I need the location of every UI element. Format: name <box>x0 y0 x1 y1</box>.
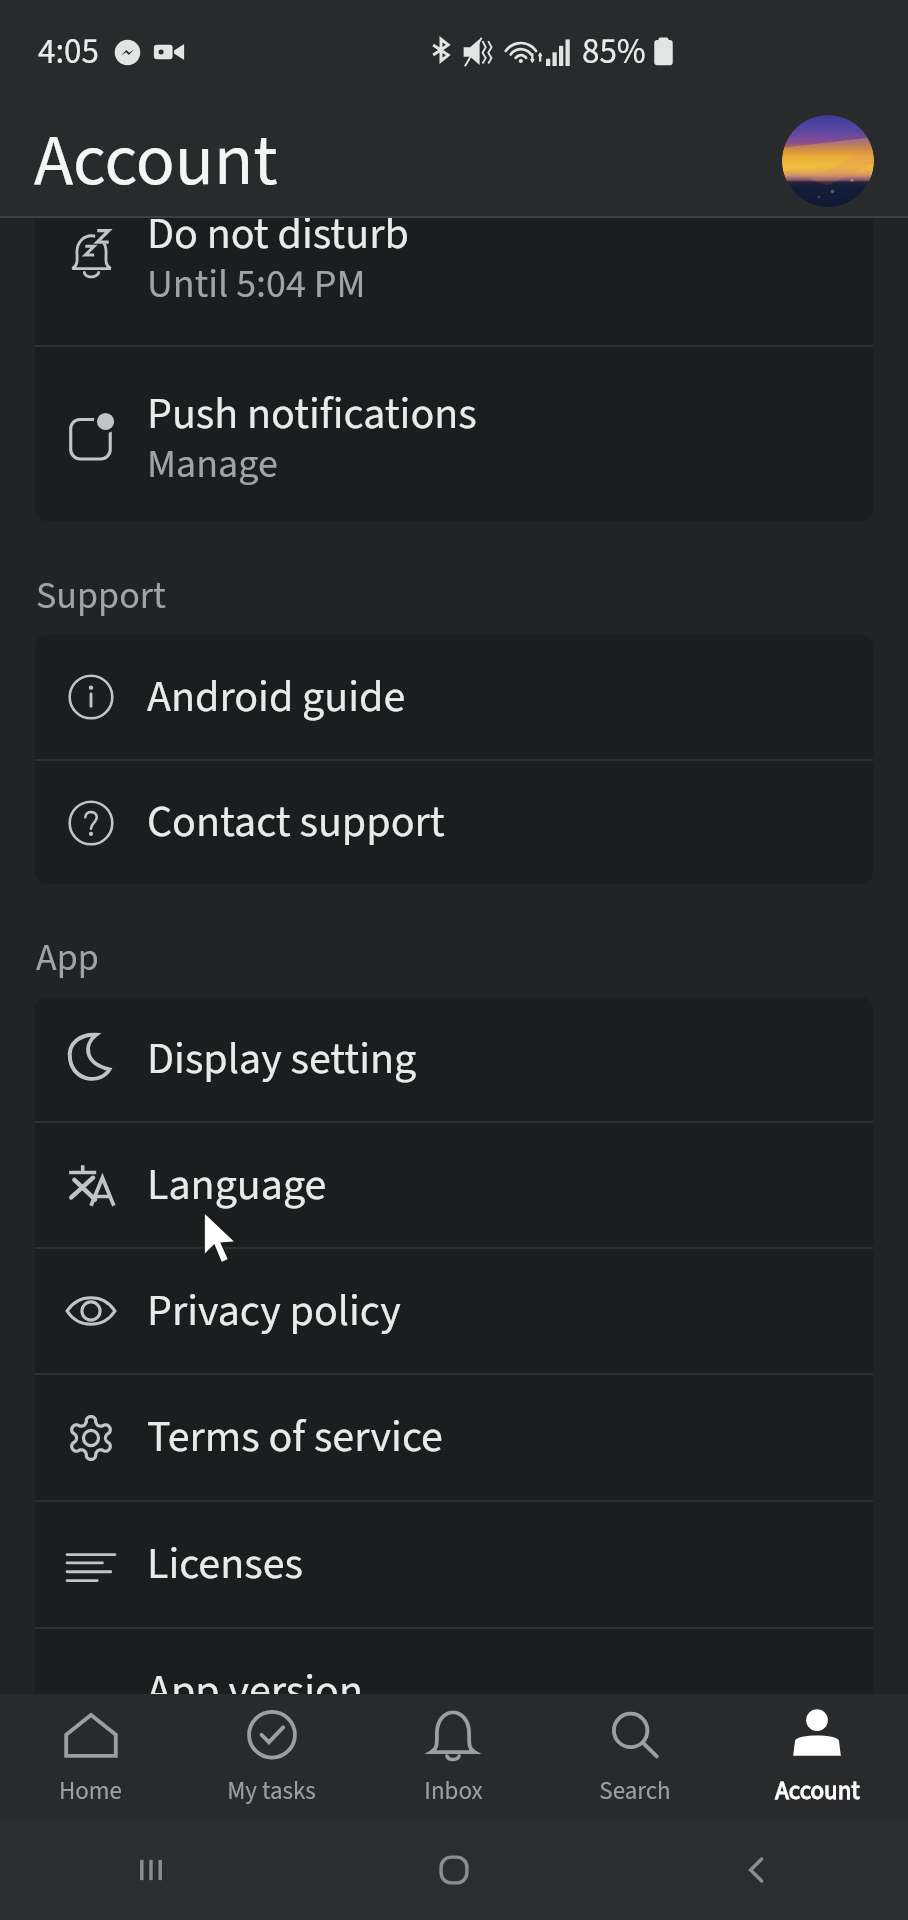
button[interactable]: Licenses <box>35 1502 873 1627</box>
staticText: Account <box>34 110 278 213</box>
staticText: Inbox <box>424 1773 483 1809</box>
button[interactable]: Recent apps <box>0 1820 302 1920</box>
staticText: Display setting <box>147 1028 417 1091</box>
staticText: My tasks <box>227 1773 316 1809</box>
staticText: Support <box>36 569 166 623</box>
button[interactable]: Home <box>302 1820 605 1920</box>
button[interactable]: Language <box>35 1123 873 1247</box>
button[interactable]: Account <box>726 1694 908 1820</box>
staticText: 85% <box>582 27 646 77</box>
staticText: Licenses <box>147 1533 303 1596</box>
staticText: Home <box>59 1773 122 1809</box>
staticText: Terms of service <box>147 1406 443 1469</box>
button[interactable]: Inbox <box>362 1694 544 1820</box>
button[interactable]: Profile <box>782 115 874 207</box>
staticText: Account <box>775 1773 860 1809</box>
staticText: Push notifications <box>147 383 477 446</box>
button[interactable]: Privacy policy <box>35 1249 873 1373</box>
staticText: Search <box>599 1773 671 1809</box>
staticText: Manage <box>147 436 278 493</box>
staticText: Privacy policy <box>147 1280 401 1343</box>
button[interactable]: App version <box>35 1629 873 1753</box>
button[interactable]: Search <box>544 1694 726 1820</box>
staticText: Do not disturb <box>147 203 409 266</box>
button[interactable]: Do not disturb <box>35 163 873 345</box>
button[interactable]: Home <box>0 1694 181 1820</box>
button[interactable]: Contact support <box>35 761 873 884</box>
staticText: Contact support <box>147 791 445 854</box>
staticText: Android guide <box>147 666 406 729</box>
button[interactable]: My tasks <box>181 1694 362 1820</box>
staticText: 4:05 <box>38 27 99 77</box>
button[interactable]: Display setting <box>35 997 873 1121</box>
staticText: App <box>36 931 99 985</box>
button[interactable]: Back <box>605 1820 908 1920</box>
button[interactable]: Push notifications <box>35 347 873 521</box>
staticText: Until 5:04 PM <box>147 256 366 313</box>
button[interactable]: Terms of service <box>35 1375 873 1500</box>
staticText: Language <box>147 1154 327 1217</box>
button[interactable]: Android guide <box>35 635 873 759</box>
staticText: App version <box>147 1660 364 1723</box>
